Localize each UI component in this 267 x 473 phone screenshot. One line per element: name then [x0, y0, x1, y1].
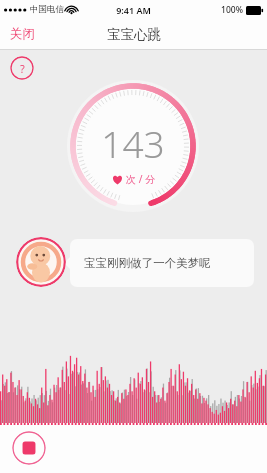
button[interactable]: 关闭: [0, 22, 45, 46]
button[interactable]: Help: [10, 56, 34, 80]
staticText: 143: [101, 118, 165, 168]
staticText: 关闭: [10, 26, 35, 42]
staticText: 100%: [221, 4, 243, 16]
staticText: 宝宝心跳: [107, 26, 161, 43]
staticText: 宝宝刚刚做了一个美梦呢: [84, 256, 211, 270]
button[interactable]: 宝宝刚刚做了一个美梦呢: [70, 239, 254, 287]
staticText: 中国电信: [30, 4, 64, 15]
button[interactable]: Baby avatar: [16, 237, 66, 287]
staticText: 9:41 AM: [116, 4, 151, 16]
staticText: ?: [20, 61, 25, 76]
button[interactable]: Stop: [12, 431, 46, 465]
staticText: 次 / 分: [126, 172, 155, 186]
